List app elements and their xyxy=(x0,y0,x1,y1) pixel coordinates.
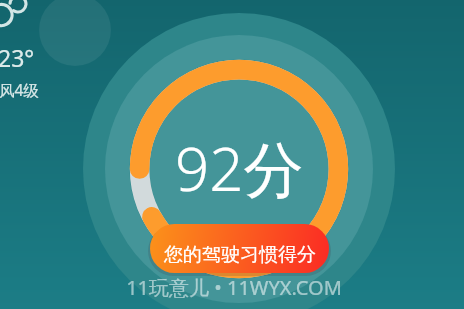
staticText: 23° xyxy=(0,42,35,73)
staticText: 92分 xyxy=(175,127,304,209)
staticText: 您的驾驶习惯得分 xyxy=(164,243,316,267)
staticText: 风4级 xyxy=(0,79,39,100)
staticText: 11玩意儿 • 11WYX.COM xyxy=(2,274,464,309)
button[interactable]: 您的驾驶习惯得分 xyxy=(150,224,329,273)
